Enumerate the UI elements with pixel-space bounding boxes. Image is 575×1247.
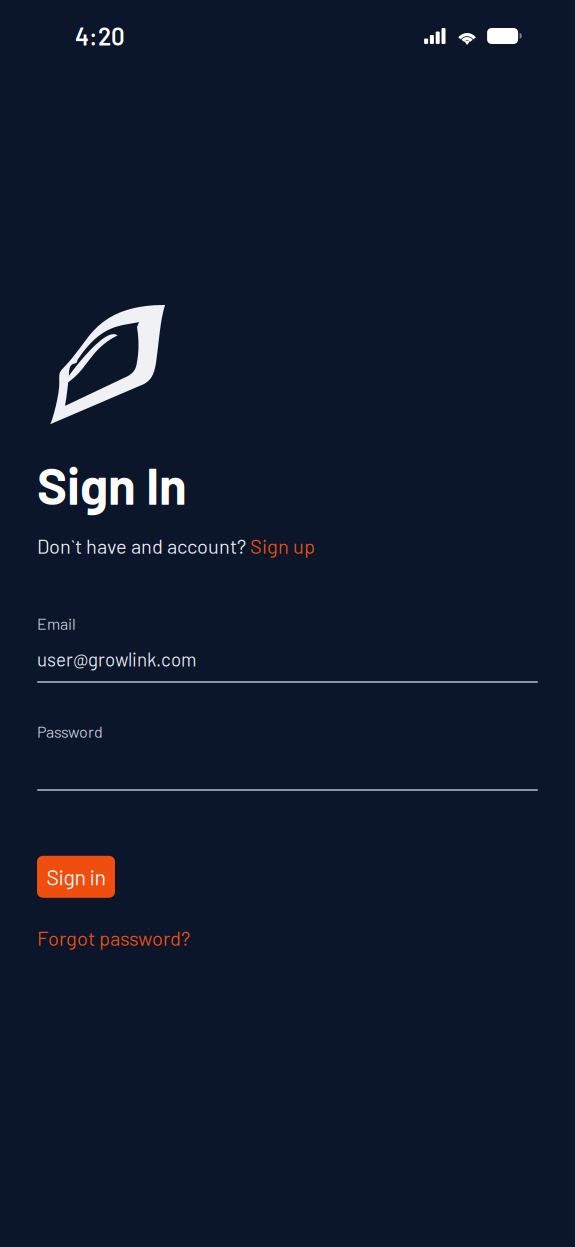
button[interactable]: Sign in — [37, 856, 115, 898]
staticText: Password — [37, 722, 103, 741]
staticText: Forgot password? — [37, 926, 190, 950]
button[interactable]: Sign up — [250, 534, 315, 558]
staticText: Sign up — [250, 534, 315, 558]
staticText: Email — [37, 614, 76, 633]
staticText: Sign In — [37, 454, 187, 515]
button[interactable]: Forgot password? — [37, 926, 190, 950]
staticText: Sign in — [46, 864, 105, 890]
staticText: 4:20 — [75, 22, 125, 50]
staticText: Don`t have and account? — [37, 534, 250, 558]
staticText: user@growlink.com — [37, 648, 196, 670]
